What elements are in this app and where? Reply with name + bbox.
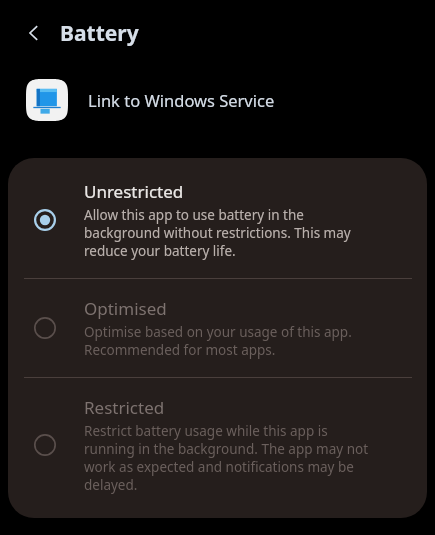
button[interactable]: Restricted: [8, 378, 427, 518]
staticText: Restrict battery usage while this app is…: [84, 422, 369, 494]
staticText: Restricted: [84, 396, 165, 419]
staticText: Allow this app to use battery in the bac…: [84, 206, 351, 260]
staticText: Unrestricted: [84, 180, 184, 203]
staticText: Optimise based on your usage of this app…: [84, 323, 352, 359]
button[interactable]: Unrestricted: [8, 158, 427, 278]
staticText: Optimised: [84, 297, 167, 320]
staticText: Battery: [60, 19, 139, 48]
staticText: Link to Windows Service: [88, 89, 275, 111]
button[interactable]: Optimised: [8, 279, 427, 377]
button[interactable]: Link to Windows Service: [0, 66, 435, 134]
button[interactable]: Back: [14, 13, 54, 53]
